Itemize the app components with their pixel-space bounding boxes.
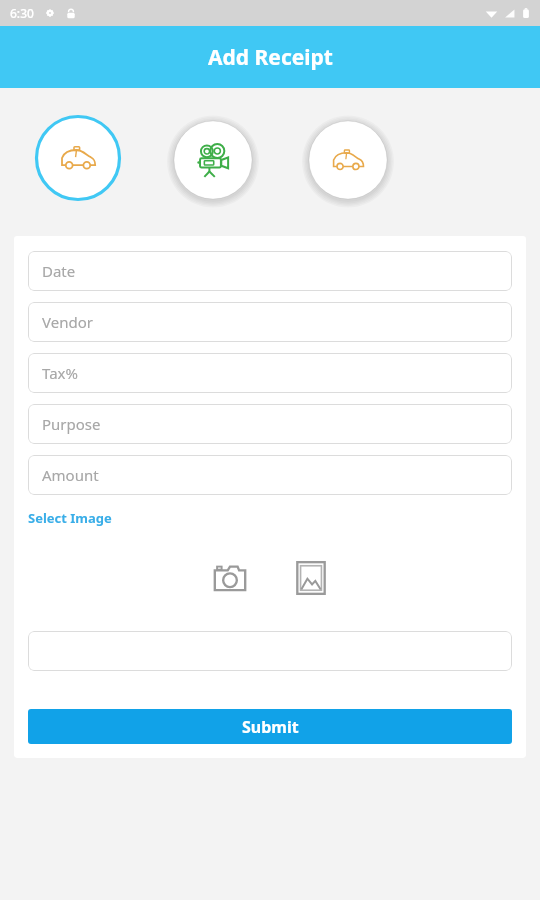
button[interactable]: Pick image from gallery: [288, 555, 334, 601]
button[interactable]: Tax%: [28, 353, 512, 393]
staticText: 6:30: [10, 5, 34, 21]
staticText: Vendor: [42, 312, 93, 332]
button[interactable]: Select Image: [28, 509, 112, 527]
staticText: Select Image: [28, 509, 112, 527]
staticText: Tax%: [42, 363, 78, 383]
button[interactable]: Amount: [28, 455, 512, 495]
button[interactable]: Taxi category: [306, 118, 390, 202]
button[interactable]: Submit: [28, 709, 512, 744]
button[interactable]: Take photo with camera: [207, 555, 253, 601]
button[interactable]: Vendor: [28, 302, 512, 342]
button[interactable]: Entertainment category: [171, 118, 255, 202]
button[interactable]: Taxi category selected: [34, 114, 122, 202]
button[interactable]: [28, 631, 512, 671]
staticText: Date: [42, 261, 76, 281]
staticText: Submit: [242, 716, 299, 738]
staticText: Purpose: [42, 414, 101, 434]
staticText: Add Receipt: [208, 43, 333, 72]
button[interactable]: Purpose: [28, 404, 512, 444]
staticText: Amount: [42, 465, 99, 485]
button[interactable]: Date: [28, 251, 512, 291]
